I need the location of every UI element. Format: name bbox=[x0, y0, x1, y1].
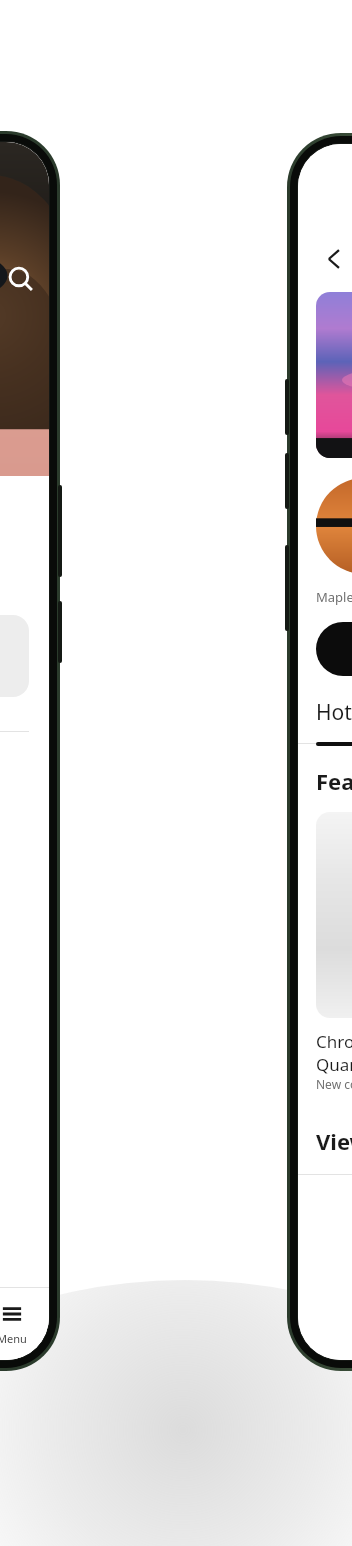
button[interactable]: Add to bag bbox=[316, 622, 352, 676]
button[interactable]: Menu bbox=[0, 1296, 49, 1352]
other: Volume down bbox=[285, 453, 289, 509]
button[interactable]: Back bbox=[312, 236, 352, 282]
staticText: Maple Street Deck bbox=[316, 588, 352, 606]
staticText: Quartz Edition bbox=[316, 1053, 352, 1076]
staticText: Chrome Ghost bbox=[316, 1030, 352, 1053]
staticText: Hot right now bbox=[316, 698, 352, 727]
button[interactable]: Search bbox=[0, 257, 43, 301]
other: Power button bbox=[285, 545, 289, 631]
staticText: Featured bbox=[316, 766, 352, 796]
staticText: New colourway bbox=[316, 1076, 352, 1092]
button[interactable] bbox=[316, 812, 352, 1018]
other: Power button bbox=[58, 485, 62, 577]
other: Volume up bbox=[285, 379, 289, 435]
button[interactable]: View all bbox=[316, 1126, 352, 1156]
staticText: Menu bbox=[0, 1331, 27, 1346]
button[interactable] bbox=[0, 615, 29, 697]
